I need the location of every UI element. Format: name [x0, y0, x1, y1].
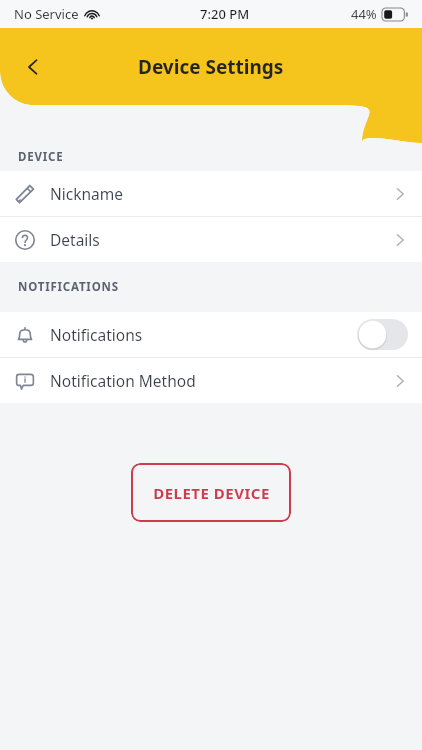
staticText: DEVICE	[18, 149, 64, 165]
staticText: DELETE DEVICE	[153, 483, 270, 503]
button[interactable]: Back	[10, 44, 56, 90]
staticText: Device Settings	[138, 54, 284, 80]
button[interactable]: DELETE DEVICE	[131, 463, 291, 522]
staticText: No Service	[14, 5, 79, 23]
staticText: Notifications	[50, 324, 143, 345]
staticText: Nickname	[50, 183, 124, 204]
button[interactable]: Nickname	[0, 171, 422, 216]
staticText: NOTIFICATIONS	[18, 279, 119, 295]
staticText: Details	[50, 229, 100, 250]
staticText: 44%	[351, 5, 377, 23]
button[interactable]: Notification Method	[0, 358, 422, 403]
staticText: Notification Method	[50, 370, 196, 391]
staticText: 7:20 PM	[200, 5, 250, 23]
button[interactable]: Notifications toggle, off	[357, 319, 408, 350]
button[interactable]: Notifications	[0, 312, 422, 357]
button[interactable]: Details	[0, 217, 422, 262]
